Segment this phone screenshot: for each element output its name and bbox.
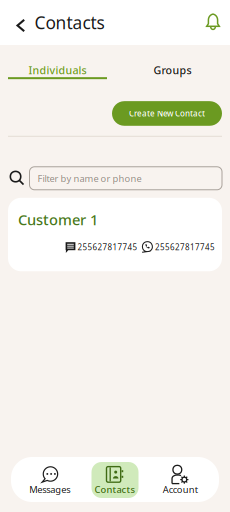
staticText: Messages [29,483,70,496]
button[interactable]: Account [148,462,213,498]
staticText: Groups [153,63,191,77]
button[interactable]: Groups [115,45,230,79]
staticText: Filter by name or phone [37,172,141,184]
button[interactable]: Messages [17,462,82,498]
button[interactable]: Contacts [82,462,148,498]
button[interactable]: Customer 1 [0,198,230,271]
staticText: Create New Contact [129,108,205,119]
staticText: 255627817745 [77,242,137,253]
staticText: Customer 1 [18,210,98,229]
staticText: Account [163,483,198,496]
staticText: Individuals [28,63,86,77]
staticText: Contacts [34,11,104,34]
staticText: 255627817745 [155,242,215,253]
button[interactable]: Notifications [194,0,230,45]
button[interactable]: Back [0,0,34,45]
staticText: Contacts [94,483,135,496]
button[interactable]: Individuals [0,45,115,79]
button[interactable]: Create New Contact [112,101,222,126]
